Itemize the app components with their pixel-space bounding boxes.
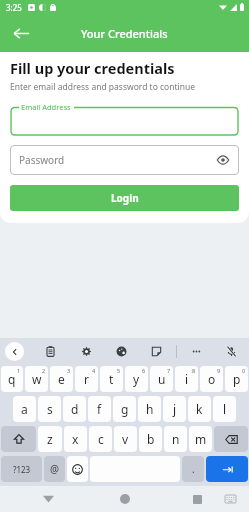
- button[interactable]: .: [182, 456, 204, 482]
- staticText: a: [21, 401, 28, 417]
- button[interactable]: r: [75, 366, 98, 392]
- staticText: r: [84, 371, 89, 387]
- staticText: b: [147, 431, 155, 447]
- button[interactable]: Voice input off: [222, 342, 241, 361]
- staticText: f: [97, 401, 102, 417]
- button[interactable]: ?123: [1, 456, 42, 482]
- button[interactable]: Backspace: [214, 426, 248, 452]
- button[interactable]: Home: [114, 488, 136, 510]
- button[interactable]: Password: [10, 145, 239, 175]
- button[interactable]: w: [25, 366, 48, 392]
- staticText: j: [173, 401, 177, 417]
- staticText: h: [146, 401, 154, 417]
- button[interactable]: g: [113, 396, 136, 422]
- button[interactable]: Back: [5, 342, 24, 361]
- button[interactable]: Hide keyboard: [37, 488, 59, 510]
- staticText: o: [208, 371, 216, 387]
- staticText: 5: [117, 367, 121, 374]
- staticText: e: [58, 371, 65, 387]
- staticText: 4: [92, 367, 96, 374]
- staticText: Email Address: [21, 102, 71, 112]
- staticText: ?123: [13, 464, 31, 475]
- button[interactable]: m: [189, 426, 212, 452]
- staticText: 0: [242, 367, 246, 374]
- button[interactable]: p: [225, 366, 248, 392]
- button[interactable]: s: [38, 396, 61, 422]
- button[interactable]: Email Address: [10, 103, 239, 136]
- button[interactable]: h: [138, 396, 161, 422]
- button[interactable]: x: [64, 426, 87, 452]
- button[interactable]: l: [213, 396, 236, 422]
- staticText: z: [47, 431, 53, 447]
- staticText: g: [121, 401, 129, 417]
- staticText: 1: [17, 367, 21, 374]
- button[interactable]: Enter: [206, 456, 248, 482]
- staticText: 3:25: [6, 2, 22, 13]
- staticText: .: [192, 462, 195, 476]
- staticText: v: [122, 431, 129, 447]
- button[interactable]: More options: [187, 342, 206, 361]
- button[interactable]: Recents: [187, 489, 207, 509]
- staticText: 6: [142, 367, 146, 374]
- button[interactable]: u: [150, 366, 173, 392]
- staticText: 8: [192, 367, 196, 374]
- button[interactable]: Settings: [77, 342, 96, 361]
- staticText: u: [158, 371, 166, 387]
- staticText: i: [185, 371, 189, 387]
- button[interactable]: @: [44, 456, 65, 482]
- button[interactable]: Emoji: [67, 456, 88, 482]
- button[interactable]: Keyboard layout: [221, 490, 239, 508]
- staticText: w: [32, 371, 42, 387]
- button[interactable]: y: [125, 366, 148, 392]
- staticText: 9: [217, 367, 221, 374]
- staticText: x: [72, 431, 79, 447]
- button[interactable]: o: [200, 366, 223, 392]
- button[interactable]: c: [89, 426, 112, 452]
- staticText: 2: [42, 367, 46, 374]
- staticText: Login: [111, 191, 139, 205]
- staticText: l: [223, 401, 227, 417]
- button[interactable]: a: [13, 396, 36, 422]
- button[interactable]: Stickers: [147, 342, 166, 361]
- staticText: t: [109, 371, 114, 387]
- button[interactable]: e: [50, 366, 73, 392]
- button[interactable]: q: [1, 366, 23, 392]
- button[interactable]: b: [139, 426, 162, 452]
- button[interactable]: j: [163, 396, 186, 422]
- button[interactable]: k: [188, 396, 211, 422]
- staticText: n: [172, 431, 180, 447]
- staticText: d: [71, 401, 79, 417]
- staticText: 3: [67, 367, 71, 374]
- button[interactable]: d: [63, 396, 86, 422]
- staticText: p: [233, 371, 241, 387]
- button[interactable]: i: [175, 366, 198, 392]
- button[interactable]: Shift: [1, 426, 36, 452]
- button[interactable]: f: [88, 396, 111, 422]
- button[interactable]: Clipboard: [41, 342, 60, 361]
- button[interactable]: z: [38, 426, 62, 452]
- staticText: Enter email address and password to cont…: [10, 81, 196, 93]
- button[interactable]: Theme: [112, 342, 131, 361]
- button[interactable]: v: [114, 426, 137, 452]
- staticText: q: [8, 371, 16, 387]
- staticText: Fill up your credentials: [10, 58, 175, 78]
- staticText: y: [133, 371, 140, 387]
- button[interactable]: n: [164, 426, 187, 452]
- button[interactable]: t: [100, 366, 123, 392]
- staticText: Password: [19, 153, 65, 167]
- staticText: s: [47, 401, 53, 417]
- button[interactable]: Login: [10, 185, 239, 211]
- staticText: @: [50, 462, 59, 476]
- staticText: Your Credentials: [81, 26, 168, 41]
- staticText: k: [196, 401, 203, 417]
- button[interactable]: Show password: [213, 150, 233, 170]
- button[interactable]: Back: [4, 16, 38, 50]
- staticText: c: [98, 431, 104, 447]
- staticText: m: [195, 431, 207, 447]
- staticText: 7: [167, 367, 171, 374]
